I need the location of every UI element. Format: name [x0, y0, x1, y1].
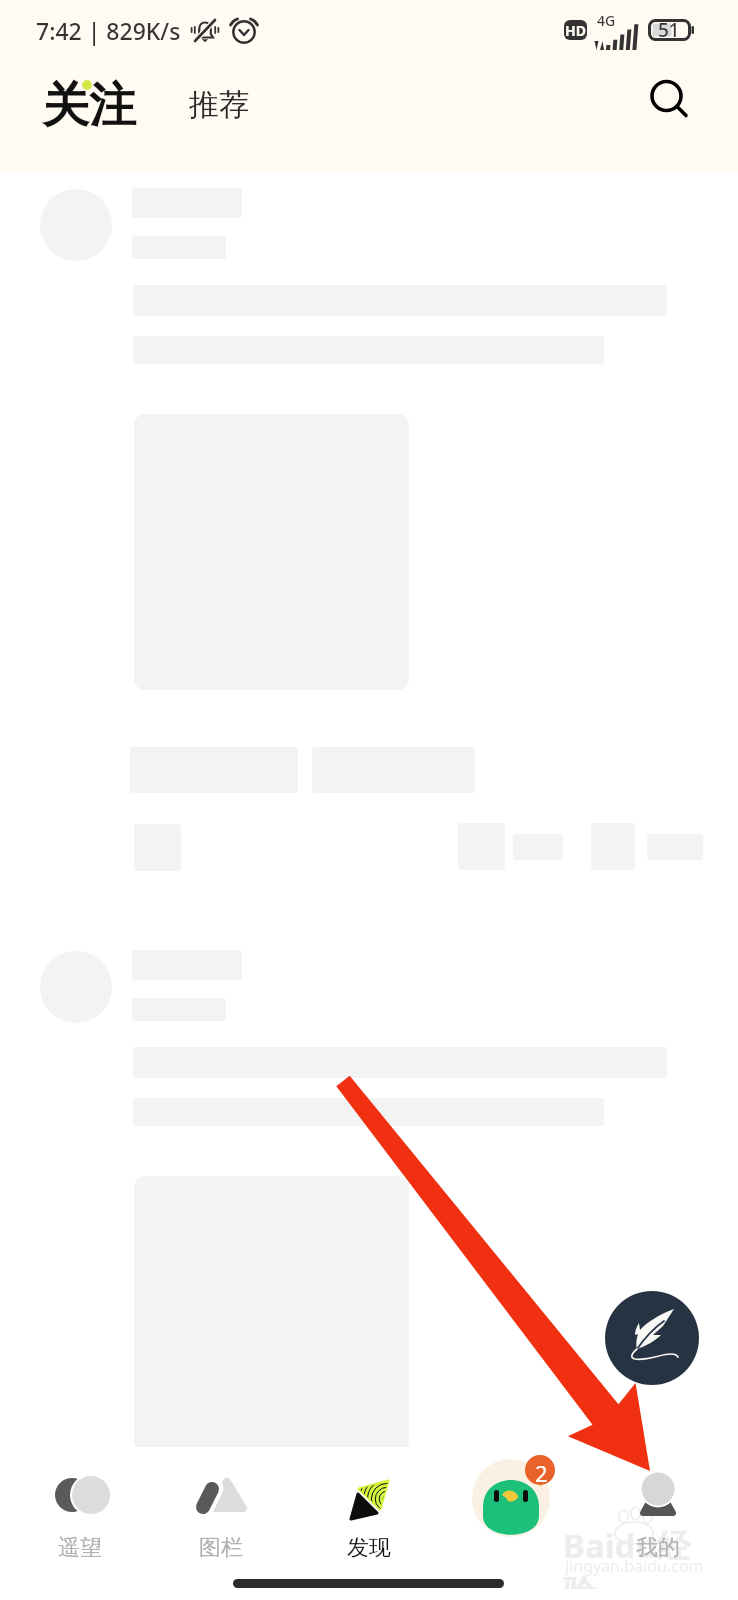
staticText: 发现	[347, 1534, 391, 1562]
staticText: 我的	[636, 1534, 680, 1562]
staticText: 推荐	[189, 86, 249, 124]
staticText: jingyan.baidu.com	[565, 1555, 704, 1577]
button[interactable]: Compose post	[605, 1291, 699, 1385]
staticText: 7:42 | 829K/s	[36, 15, 181, 46]
staticText: 4G	[597, 11, 616, 30]
button[interactable]: 关注	[42, 76, 136, 135]
staticText: 图栏	[199, 1534, 243, 1562]
button[interactable]: Search	[639, 70, 706, 137]
staticText: 2	[535, 1458, 548, 1488]
staticText: 遥望	[58, 1534, 102, 1562]
staticText: Baidu经验	[563, 1523, 703, 1589]
button[interactable]: 推荐	[189, 86, 249, 124]
button[interactable]: 遥望	[15, 1453, 145, 1565]
button[interactable]: 我的	[593, 1453, 723, 1565]
button[interactable]: 发现	[304, 1453, 434, 1565]
button[interactable]: Messages	[447, 1453, 577, 1565]
button[interactable]: 图栏	[156, 1453, 286, 1565]
staticText: HD	[565, 21, 586, 40]
staticText: 51	[658, 17, 680, 43]
staticText: 关注	[42, 76, 136, 135]
